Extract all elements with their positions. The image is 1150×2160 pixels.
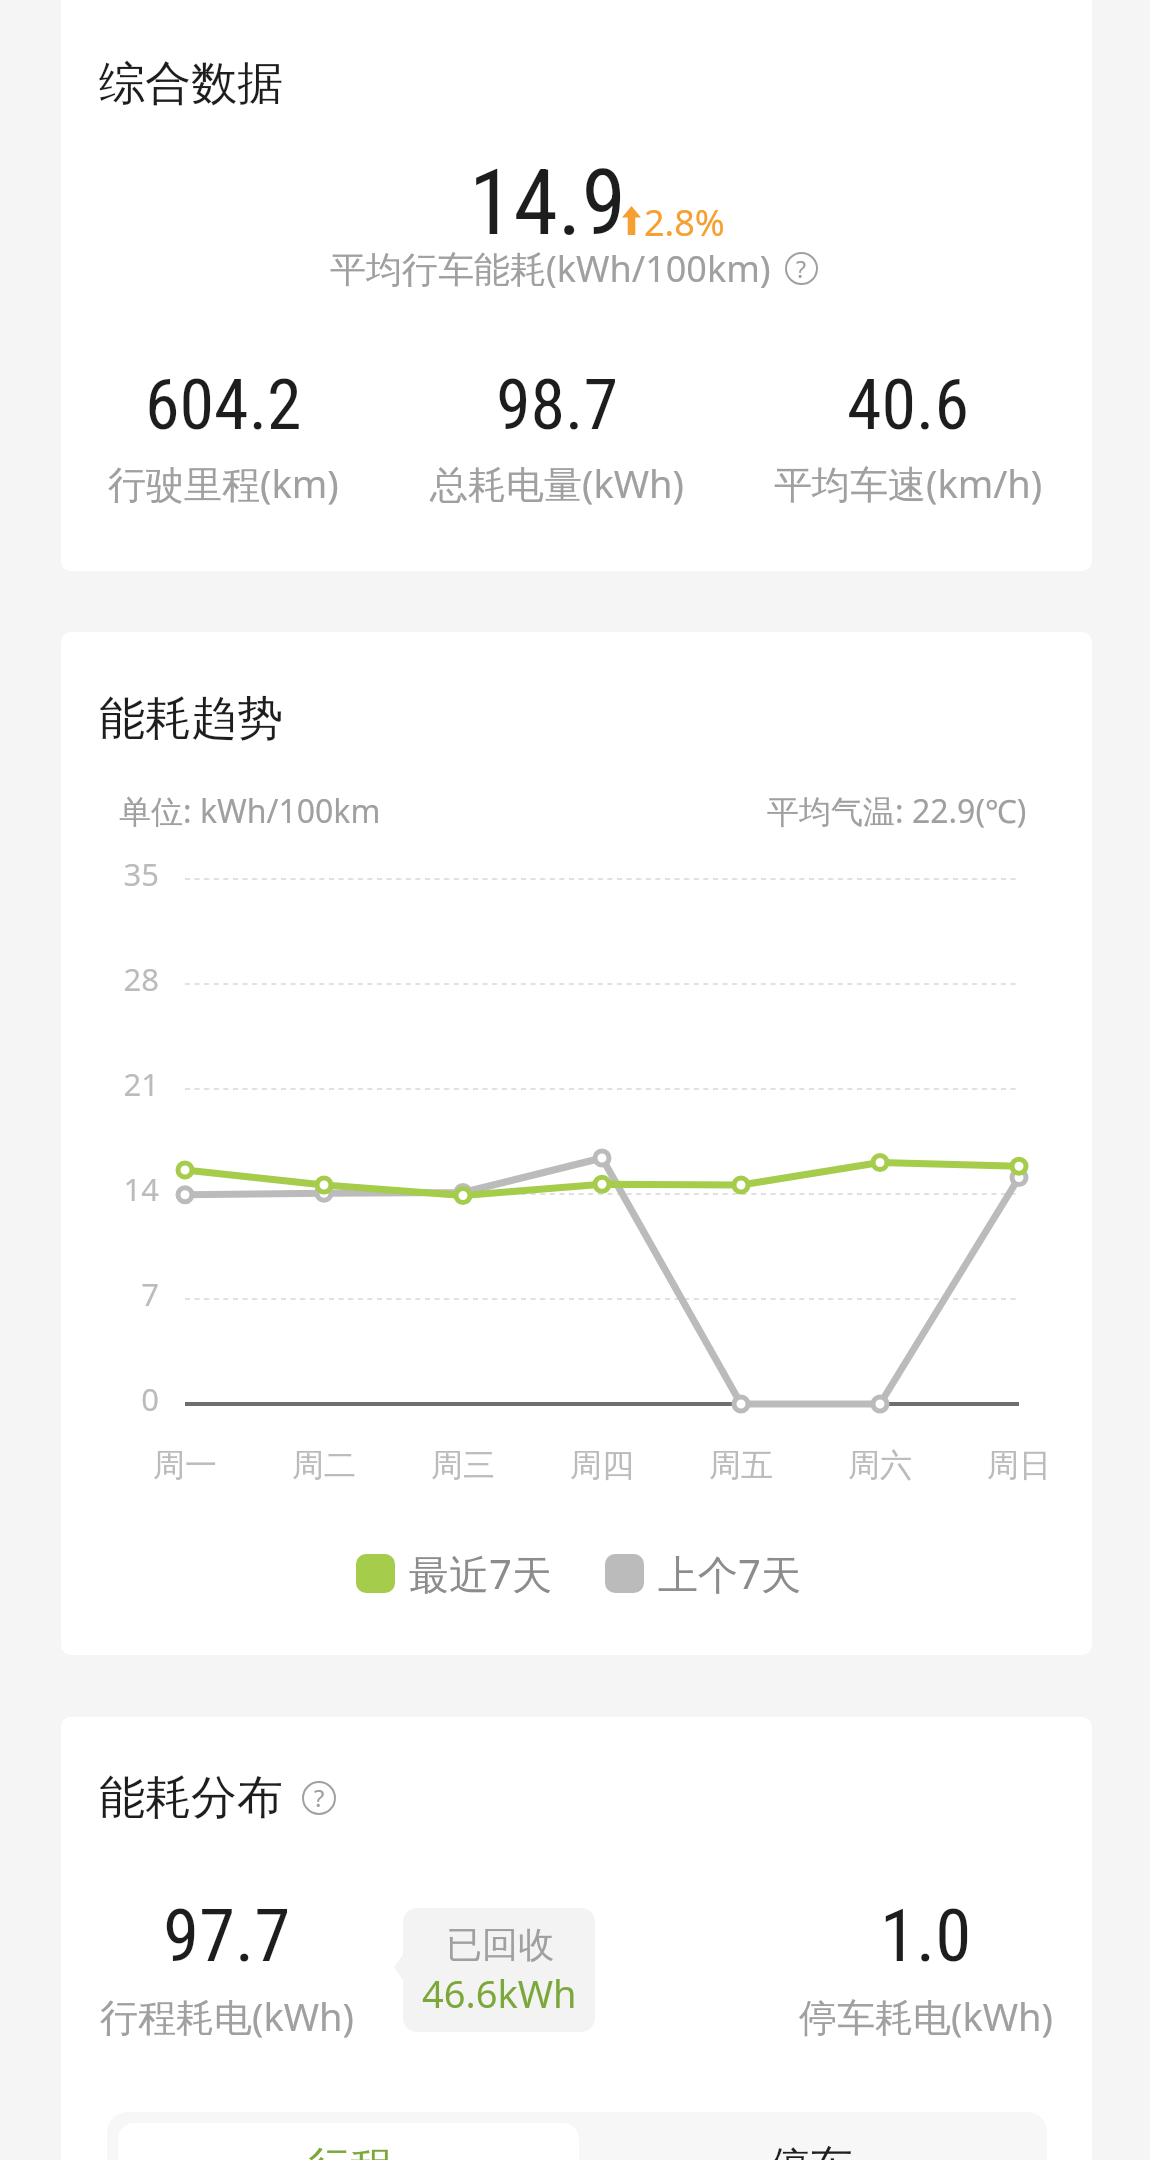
button[interactable]: Help [785, 252, 818, 285]
staticText: 1.0 [880, 1893, 972, 1979]
staticText: 周二 [292, 1445, 356, 1485]
staticText: ? [314, 1782, 325, 1814]
staticText: 46.6kWh [422, 1967, 577, 2019]
staticText: 停车 [769, 2141, 853, 2160]
staticText: ? [796, 253, 807, 284]
staticText: 行程耗电(kWh) [100, 1990, 354, 2042]
staticText: 周三 [431, 1445, 495, 1485]
staticText: 21 [101, 1063, 159, 1105]
staticText: 能耗趋势 [99, 690, 283, 748]
staticText: 40.6 [847, 364, 970, 446]
staticText: 0 [101, 1378, 159, 1420]
staticText: 上个7天 [658, 1546, 801, 1601]
staticText: 周四 [570, 1445, 634, 1485]
staticText: 平均行车能耗(kWh/100km) [330, 244, 771, 293]
staticText: 97.7 [163, 1893, 291, 1979]
staticText: 14 [101, 1168, 159, 1210]
button[interactable] [118, 2123, 579, 2160]
staticText: 7 [101, 1273, 159, 1315]
staticText: 已回收 [446, 1922, 554, 1967]
staticText: 98.7 [496, 364, 619, 446]
staticText: 综合数据 [99, 55, 283, 113]
staticText: 行程 [308, 2141, 392, 2160]
button[interactable] [107, 2112, 1047, 2160]
staticText: 604.2 [145, 364, 302, 446]
staticText: 最近7天 [409, 1546, 552, 1601]
staticText: 单位: kWh/100km [119, 789, 381, 833]
staticText: 周日 [987, 1445, 1051, 1485]
staticText: 14.9 [469, 151, 627, 256]
staticText: 2.8% [644, 198, 725, 247]
staticText: 停车耗电(kWh) [799, 1990, 1053, 2042]
staticText: 平均气温: 22.9(℃) [767, 789, 1027, 833]
staticText: 总耗电量(kWh) [430, 457, 684, 509]
staticText: 周五 [709, 1445, 773, 1485]
staticText: 28 [101, 958, 159, 1000]
staticText: 平均车速(km/h) [774, 457, 1043, 509]
staticText: 35 [101, 853, 159, 895]
staticText: 能耗分布 [99, 1769, 283, 1827]
staticText: 周一 [153, 1445, 217, 1485]
staticText: 行驶里程(km) [108, 457, 339, 509]
staticText: 周六 [848, 1445, 912, 1485]
button[interactable]: Help [302, 1781, 336, 1815]
